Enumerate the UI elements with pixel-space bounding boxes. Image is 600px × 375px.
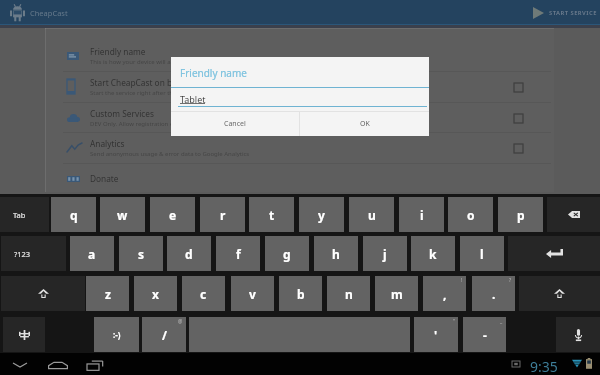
button[interactable]: m [375,276,418,311]
button[interactable]: Start CheapCast on boot [45,71,554,102]
staticText: This is how your device will appear [90,58,188,66]
button[interactable]: e [150,197,195,232]
button[interactable]: o [448,197,493,232]
button[interactable]: Cancel [171,112,299,136]
button[interactable]: ! [423,276,466,311]
staticText: Start the service right after the device… [90,89,214,97]
button[interactable]: d [167,236,211,271]
button[interactable]: l [460,236,504,271]
staticText: Tab [13,210,26,220]
button[interactable]: p [498,197,543,232]
button[interactable]: Home [42,353,74,375]
button[interactable]: y [299,197,344,232]
staticText: @ [178,318,183,325]
button[interactable]: i [399,197,444,232]
button[interactable]: j [363,236,407,271]
staticText: x [152,286,159,302]
staticText: Custom Services [90,108,154,119]
button[interactable]: v [231,276,274,311]
button[interactable]: ? [472,276,515,311]
staticText: , [443,286,447,302]
staticText: o [467,207,475,223]
button[interactable]: ?123 [1,236,66,271]
staticText: Donate [90,173,119,184]
staticText: Friendly name [180,66,247,80]
staticText: Send anonymous usage & error data to Goo… [90,150,250,158]
button[interactable]: mic [556,317,600,352]
button[interactable]: Toggle Custom Services [510,110,526,126]
staticText: j [383,246,387,262]
button[interactable]: f [216,236,260,271]
staticText: i [420,207,424,223]
staticText: ' [434,327,438,343]
button[interactable]: Custom Services [45,102,554,133]
staticText: Friendly name [90,46,146,57]
staticText: n [345,286,353,302]
staticText: d [185,246,193,262]
button[interactable]: OK [300,112,429,136]
button[interactable]: " [414,317,458,352]
button[interactable]: enter [508,236,600,271]
button[interactable]: @ [142,317,186,352]
button[interactable]: h [314,236,358,271]
staticText: DEV Only. Allow registration of custom s… [90,120,223,128]
staticText: 9:35 [530,357,558,375]
staticText: Tablet [180,93,206,105]
button[interactable]: shift [519,276,600,311]
button[interactable]: z [86,276,129,311]
staticText: t [269,207,275,223]
staticText: w [117,207,128,223]
button[interactable]: kb [3,317,45,352]
staticText: k [429,246,437,262]
button[interactable]: shift [1,276,85,311]
button[interactable]: Donate [45,163,554,194]
staticText: b [297,286,305,302]
button[interactable]: s [119,236,163,271]
button[interactable]: Friendly name [45,40,554,71]
button[interactable]: smile [94,317,139,352]
staticText: h [332,246,340,262]
button[interactable]: _ [463,317,506,352]
button[interactable]: Analytics [45,132,554,163]
staticText: u [368,207,376,223]
button[interactable]: Toggle Analytics [510,140,526,156]
staticText: f [236,246,241,262]
staticText: ! [461,277,463,284]
button[interactable]: Tab [0,197,49,232]
button[interactable]: n [327,276,370,311]
button[interactable]: Recent apps [79,353,110,375]
staticText: ?123 [14,249,31,259]
staticText: y [318,207,325,223]
staticText: CheapCast [30,8,68,18]
button[interactable]: u [349,197,394,232]
button[interactable]: q [51,197,96,232]
button[interactable]: t [249,197,294,232]
button[interactable]: Back [4,353,35,375]
staticText: v [249,286,256,302]
staticText: Analytics [90,138,125,149]
staticText: ? [509,277,512,284]
button[interactable]: g [265,236,309,271]
staticText: OK [360,119,370,129]
button[interactable]: c [182,276,225,311]
button[interactable]: bksp [547,197,600,232]
button[interactable]: x [134,276,177,311]
staticText: s [138,246,145,262]
staticText: l [480,246,484,262]
button[interactable]: b [279,276,322,311]
button[interactable]: a [70,236,114,271]
staticText: p [517,207,525,223]
button[interactable]: Toggle Start CheapCast on boot [510,79,526,95]
button[interactable]: START SERVICE [526,0,600,25]
staticText: START SERVICE [549,9,597,17]
staticText: Cancel [224,119,246,129]
staticText: z [105,286,111,302]
button[interactable]: w [100,197,145,232]
staticText: e [169,207,177,223]
button[interactable]: r [200,197,245,232]
staticText: - [483,327,487,343]
staticText: m [391,286,403,302]
button[interactable]: k [411,236,455,271]
staticText: c [200,286,207,302]
